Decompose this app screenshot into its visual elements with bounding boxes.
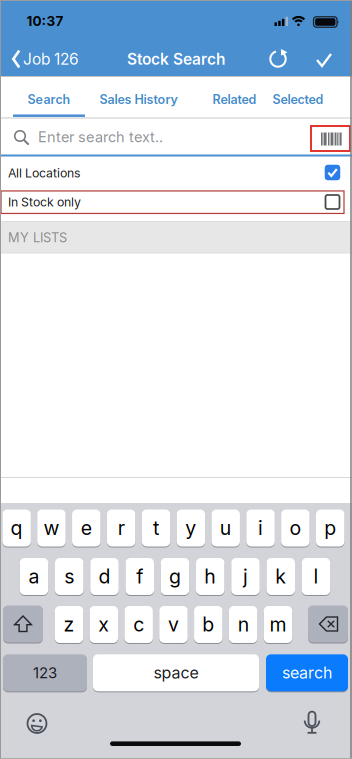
staticText: c — [133, 613, 144, 636]
button[interactable]: Emoji — [23, 709, 51, 737]
staticText: m — [269, 613, 286, 636]
staticText: x — [98, 613, 109, 636]
staticText: u — [220, 516, 232, 540]
button[interactable]: Done — [306, 43, 342, 75]
staticText: d — [98, 565, 110, 588]
button[interactable]: w — [37, 509, 66, 547]
staticText: j — [243, 565, 248, 588]
button[interactable]: Shift — [3, 605, 43, 643]
staticText: Job 126 — [23, 50, 79, 68]
button[interactable]: Scan barcode — [315, 127, 347, 151]
staticText: Sales History — [99, 92, 177, 107]
staticText: In Stock only — [8, 195, 81, 209]
button[interactable]: n — [229, 605, 257, 643]
button[interactable]: Search — [27, 79, 70, 119]
button[interactable]: h — [196, 557, 224, 595]
button[interactable]: Selected — [272, 79, 323, 119]
button[interactable]: l — [302, 557, 330, 595]
staticText: s — [64, 565, 74, 588]
staticText: y — [185, 516, 196, 540]
button[interactable]: Refresh — [260, 42, 296, 76]
button[interactable]: c — [124, 605, 153, 643]
button[interactable]: r — [107, 509, 135, 547]
button[interactable]: a — [20, 557, 48, 595]
button[interactable]: In Stock only — [0, 188, 352, 216]
staticText: a — [28, 565, 39, 588]
button[interactable]: Delete — [308, 605, 348, 643]
staticText: n — [238, 613, 249, 636]
staticText: q — [11, 516, 23, 540]
staticText: e — [81, 516, 92, 540]
staticText: Search — [27, 92, 70, 107]
staticText: 123 — [33, 664, 57, 682]
staticText: w — [43, 516, 59, 540]
button[interactable]: f — [125, 557, 154, 595]
button[interactable]: p — [316, 509, 344, 547]
button[interactable]: m — [264, 605, 292, 643]
button[interactable]: t — [142, 509, 170, 547]
button[interactable]: s — [55, 557, 83, 595]
button[interactable]: Related — [212, 79, 256, 119]
button[interactable]: k — [266, 557, 295, 595]
staticText: All Locations — [8, 166, 80, 180]
button[interactable]: search — [266, 654, 348, 692]
button[interactable]: All Locations — [0, 156, 352, 190]
button[interactable]: Sales History — [99, 79, 177, 119]
staticText: Selected — [272, 92, 323, 107]
button[interactable]: Back — [8, 44, 92, 74]
staticText: b — [202, 613, 214, 636]
staticText: search — [282, 663, 332, 682]
staticText: 10:37 — [26, 13, 63, 29]
button[interactable]: u — [211, 509, 240, 547]
staticText: MY LISTS — [8, 230, 67, 245]
staticText: t — [153, 516, 159, 540]
staticText: space — [153, 663, 198, 682]
button[interactable]: Enter search text — [0, 119, 300, 155]
button[interactable]: j — [231, 557, 260, 595]
button[interactable]: 123 — [3, 654, 87, 692]
staticText: h — [204, 565, 216, 588]
button[interactable]: o — [281, 509, 310, 547]
button[interactable]: y — [177, 509, 205, 547]
staticText: l — [313, 565, 318, 588]
button[interactable]: z — [55, 605, 83, 643]
staticText: Stock Search — [127, 50, 225, 68]
staticText: g — [169, 565, 181, 588]
staticText: v — [168, 613, 179, 636]
staticText: f — [136, 565, 143, 588]
button[interactable]: g — [161, 557, 189, 595]
button[interactable]: d — [90, 557, 119, 595]
button[interactable]: x — [90, 605, 118, 643]
button[interactable]: b — [194, 605, 223, 643]
staticText: z — [63, 613, 74, 636]
staticText: Enter search text.. — [38, 128, 163, 146]
button[interactable]: i — [246, 509, 275, 547]
button[interactable]: Dictation — [298, 709, 326, 736]
staticText: o — [289, 516, 301, 540]
staticText: r — [118, 516, 125, 540]
staticText: Related — [212, 92, 256, 107]
staticText: i — [258, 516, 263, 540]
button[interactable]: e — [72, 509, 101, 547]
button[interactable]: v — [159, 605, 188, 643]
button[interactable]: q — [2, 509, 31, 547]
staticText: p — [324, 516, 336, 540]
staticText: k — [275, 565, 286, 588]
button[interactable]: space — [93, 654, 259, 692]
